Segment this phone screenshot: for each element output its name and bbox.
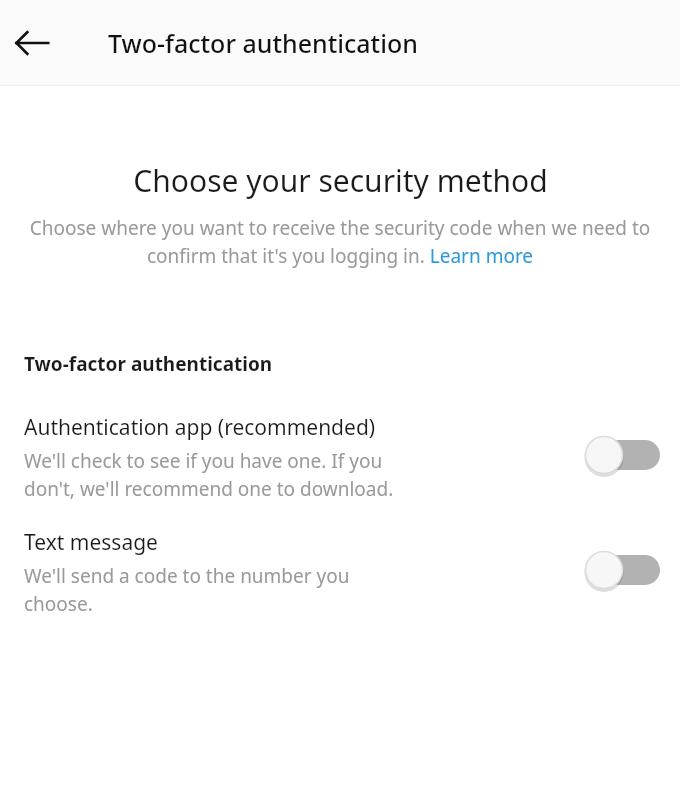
staticText: Text message [24,528,158,557]
staticText: We'll check to see if you have one. If y… [24,448,394,502]
staticText: We'll send a code to the number you choo… [24,563,350,617]
button[interactable]: Toggle Text message [582,548,660,592]
staticText: Choose your security method [133,160,548,201]
button[interactable]: Text message [0,524,680,621]
staticText: Authentication app (recommended) [24,413,376,442]
staticText: Choose where you want to receive the sec… [18,215,662,269]
staticText: Two-factor authentication [108,26,418,60]
button[interactable]: Authentication app (recommended) [0,409,680,506]
button[interactable]: Back [4,15,60,71]
staticText: Two-factor authentication [24,351,273,377]
button[interactable]: Toggle Authentication app (recommended) [582,433,660,477]
